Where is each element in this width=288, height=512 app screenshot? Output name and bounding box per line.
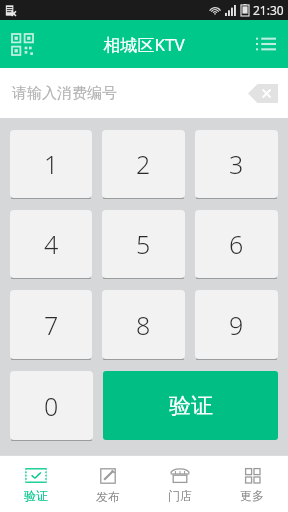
staticText: 验证 [169, 392, 213, 420]
staticText: 3 [229, 147, 244, 181]
button[interactable]: 6 [195, 210, 278, 278]
staticText: 6 [229, 227, 244, 261]
staticText: 7 [44, 308, 59, 342]
button[interactable]: Backspace [246, 81, 280, 105]
staticText: 更多 [240, 488, 264, 503]
button[interactable]: 更多 [216, 456, 288, 512]
staticText: 1 [44, 147, 59, 181]
button[interactable]: 验证 [103, 371, 278, 440]
staticText: 4 [44, 227, 59, 261]
button[interactable]: 门店 [144, 456, 216, 512]
staticText: 0 [44, 389, 59, 423]
button[interactable]: 发布 [72, 456, 144, 512]
staticText: 9 [229, 308, 244, 342]
button[interactable]: 0 [10, 371, 93, 440]
staticText: 2 [136, 147, 151, 181]
button[interactable]: 8 [102, 290, 185, 359]
button[interactable]: 5 [102, 210, 185, 278]
staticText: 门店 [168, 488, 192, 503]
button[interactable]: Menu [244, 22, 288, 66]
button[interactable]: 验证 [0, 456, 72, 512]
button[interactable]: 4 [10, 210, 92, 278]
staticText: 21:30 [253, 2, 284, 18]
staticText: 验证 [24, 488, 48, 503]
staticText: 8 [136, 308, 151, 342]
button[interactable]: 3 [195, 130, 278, 198]
staticText: 5 [136, 227, 151, 261]
button[interactable]: 7 [10, 290, 92, 359]
button[interactable]: 9 [195, 290, 278, 359]
button[interactable]: 1 [10, 130, 92, 198]
button[interactable]: Scan QR code [0, 22, 44, 66]
staticText: 相城区KTV [103, 33, 185, 56]
staticText: 请输入消费编号 [12, 84, 117, 103]
staticText: 发布 [96, 489, 120, 504]
button[interactable]: 2 [102, 130, 185, 198]
